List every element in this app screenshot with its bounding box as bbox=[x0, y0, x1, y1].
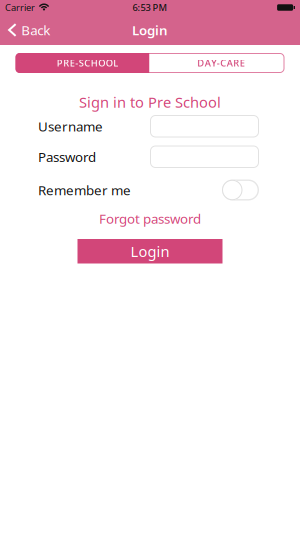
staticText: Password bbox=[38, 148, 96, 166]
staticText: Back bbox=[21, 21, 50, 39]
staticText: Login bbox=[132, 21, 168, 39]
button[interactable]: Forgot password bbox=[99, 200, 201, 226]
staticText: DAY-CARE bbox=[197, 57, 245, 69]
staticText: Sign in to Pre School bbox=[79, 92, 221, 112]
staticText: 6:53 PM bbox=[133, 1, 168, 14]
staticText: Login bbox=[130, 241, 169, 261]
staticText: Remember me bbox=[38, 181, 131, 199]
button[interactable]: Remember me bbox=[222, 179, 259, 200]
button[interactable]: DAY-CARE bbox=[149, 53, 284, 73]
button[interactable]: Login bbox=[77, 239, 222, 263]
staticText: PRE-SCHOOL bbox=[57, 57, 118, 69]
button[interactable]: Back bbox=[8, 21, 50, 39]
button[interactable]: PRE-SCHOOL bbox=[15, 53, 149, 73]
staticText: Forgot password bbox=[99, 210, 201, 227]
staticText: Carrier bbox=[5, 1, 35, 14]
staticText: Username bbox=[38, 117, 103, 135]
